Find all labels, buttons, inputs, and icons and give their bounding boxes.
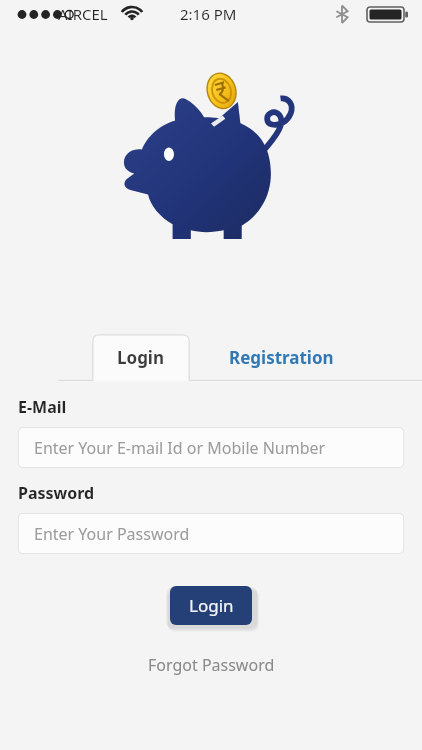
- staticText: Login: [189, 594, 234, 617]
- button[interactable]: Login: [92, 334, 190, 381]
- button[interactable]: Enter Your E-mail Id or Mobile Number: [18, 427, 404, 468]
- staticText: Registration: [229, 346, 334, 369]
- other: Piggy bank logo: [115, 62, 307, 248]
- staticText: Login: [117, 346, 165, 369]
- button[interactable]: Registration: [190, 334, 372, 381]
- staticText: 2:16 PM: [180, 4, 237, 24]
- button[interactable]: Login: [170, 586, 252, 625]
- button[interactable]: Enter Your Password: [18, 513, 404, 554]
- staticText: Password: [18, 482, 95, 504]
- staticText: Enter Your E-mail Id or Mobile Number: [34, 437, 326, 459]
- button[interactable]: Forgot Password: [136, 649, 287, 681]
- staticText: Forgot Password: [148, 654, 275, 676]
- staticText: E-Mail: [18, 396, 67, 418]
- staticText: AIRCEL: [58, 4, 108, 24]
- staticText: Enter Your Password: [34, 523, 190, 545]
